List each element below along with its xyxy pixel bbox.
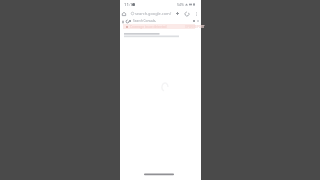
staticText: Coverage issue detected xyxy=(130,25,167,29)
staticText: Search Console xyxy=(133,19,156,23)
staticText: OPEN REPORT xyxy=(185,25,205,29)
staticText: 54% xyxy=(177,2,184,7)
button[interactable]: search.google.com/search-console/i xyxy=(131,10,177,17)
button[interactable]: Menu xyxy=(121,20,124,23)
staticText: 11:14 xyxy=(124,1,135,7)
staticText: search.google.com/search-console/i xyxy=(135,11,177,16)
button[interactable]: Home xyxy=(120,10,127,17)
button[interactable]: More options xyxy=(193,11,199,17)
button[interactable]: New tab xyxy=(174,10,181,17)
button[interactable]: Reload xyxy=(183,10,190,17)
